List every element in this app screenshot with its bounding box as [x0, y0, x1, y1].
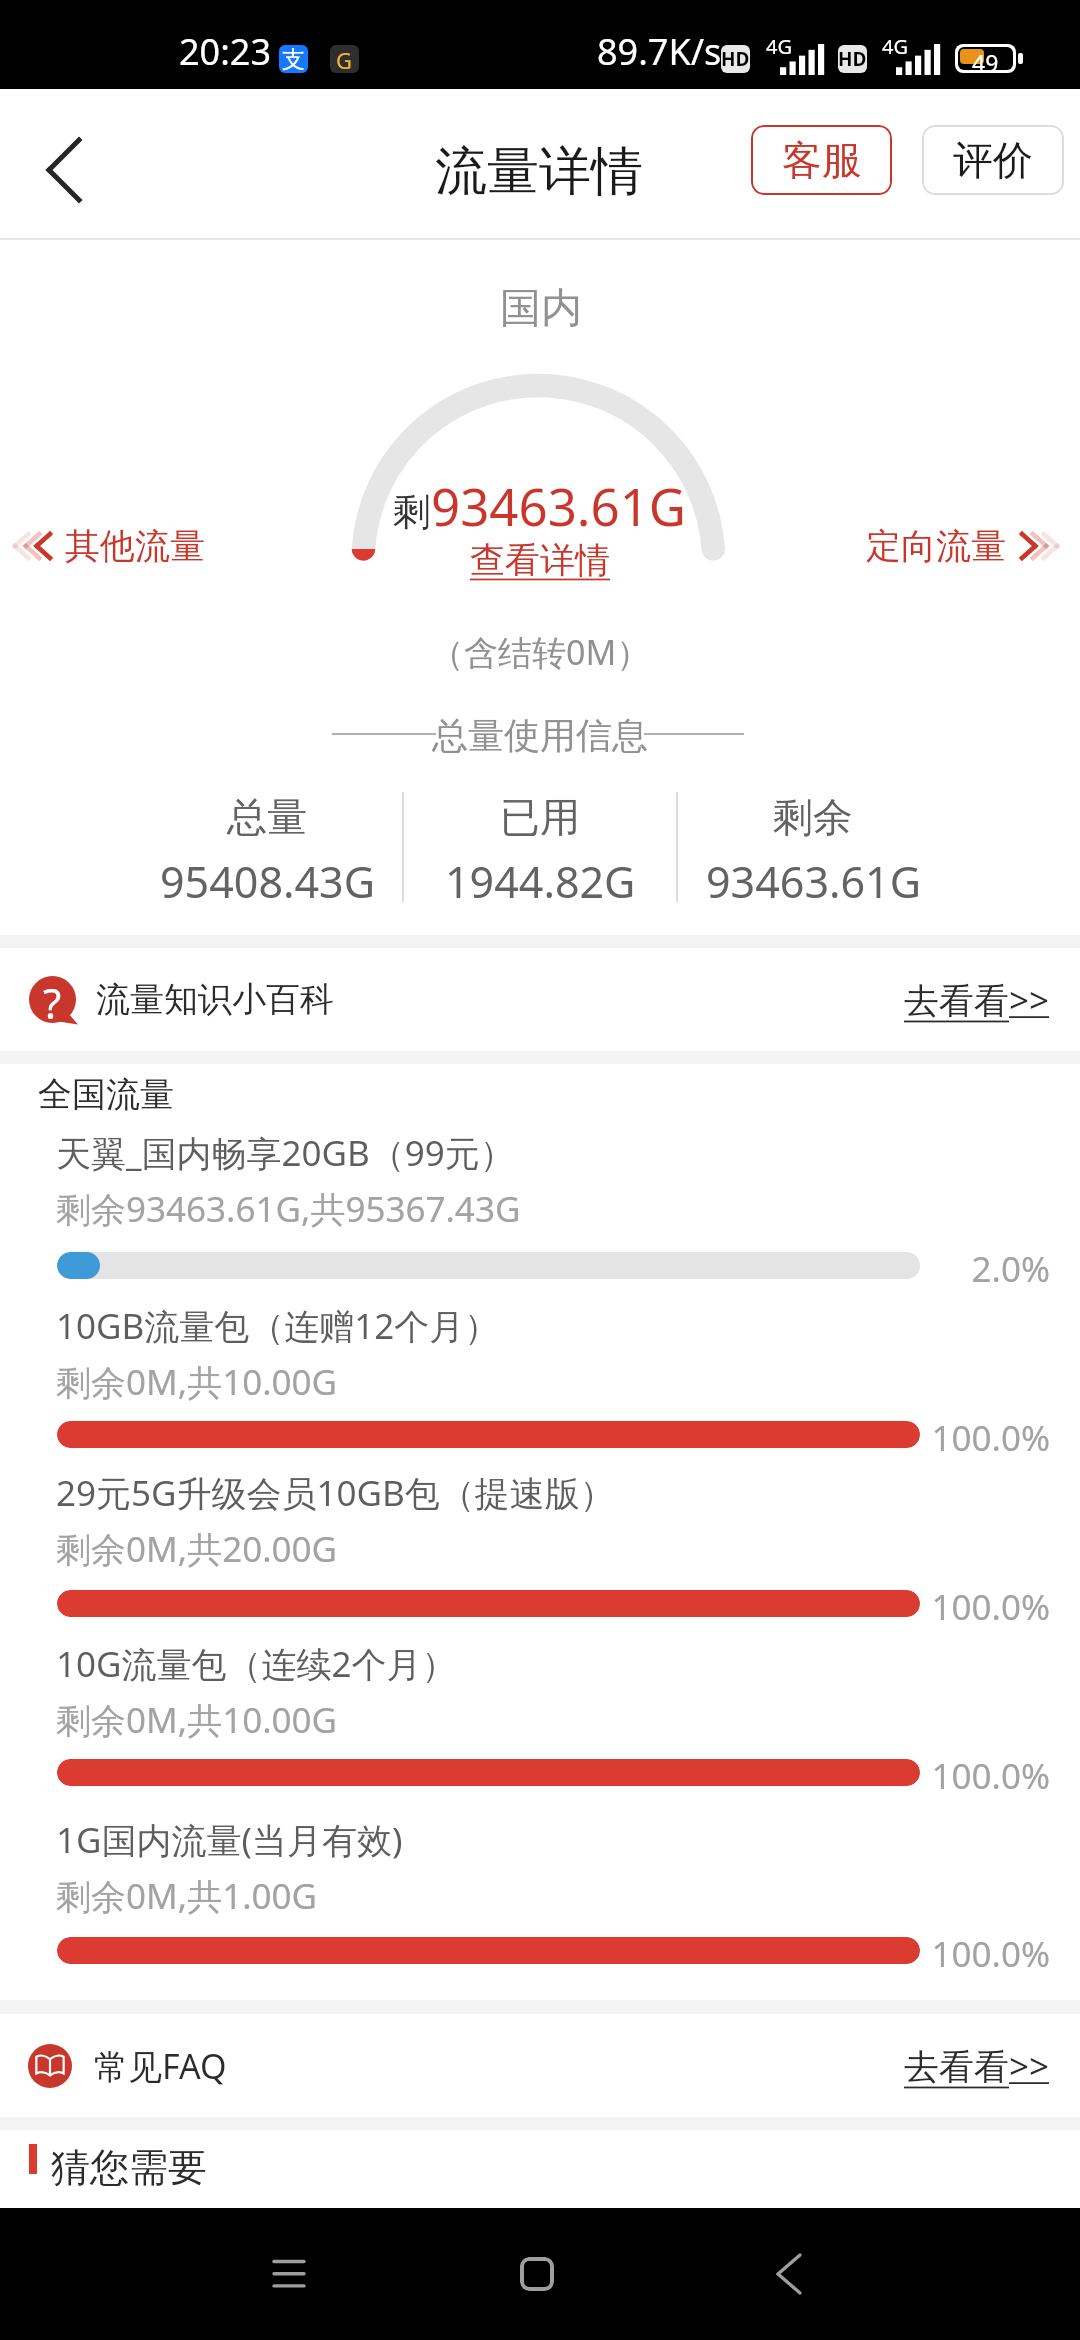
staticText: 49	[972, 47, 999, 70]
staticText: 10GB流量包（连赠12个月）	[56, 1302, 500, 1350]
staticText: 10G流量包（连续2个月）	[56, 1640, 457, 1688]
staticText: （含结转0M）	[430, 629, 651, 675]
button[interactable]: 定向流量	[856, 516, 1068, 576]
staticText: 1G国内流量(当月有效)	[56, 1816, 403, 1864]
button[interactable]: Back	[21, 125, 111, 215]
staticText: 100.0%	[869, 1930, 1050, 1978]
staticText: 100.0%	[869, 1583, 1050, 1631]
staticText: 95408.43G	[160, 852, 375, 911]
button[interactable]: Back	[739, 2224, 839, 2324]
staticText: 流量知识小百科	[96, 978, 334, 1021]
staticText: HD	[721, 46, 750, 72]
button[interactable]: 评价	[922, 125, 1064, 195]
button[interactable]: 其他流量	[3, 516, 215, 576]
staticText: 天翼_国内畅享20GB（99元）	[56, 1129, 515, 1177]
staticText: 100.0%	[869, 1752, 1050, 1800]
staticText: 4G	[882, 33, 908, 60]
staticText: 100.0%	[869, 1414, 1050, 1462]
staticText: 剩余0M,共10.00G	[56, 1696, 338, 1744]
staticText: 评价	[953, 135, 1033, 185]
staticText: 剩	[393, 488, 431, 536]
staticText: 剩余	[773, 792, 853, 842]
staticText: 剩余0M,共20.00G	[56, 1525, 338, 1573]
staticText: 20:23	[179, 27, 272, 76]
staticText: HD	[838, 46, 867, 72]
staticText: 29元5G升级会员10GB包（提速版）	[56, 1469, 615, 1517]
staticText: 猜您需要	[51, 2143, 207, 2192]
staticText: 总量使用信息	[432, 713, 648, 758]
button[interactable]	[0, 1455, 1080, 1624]
staticText: 1944.82G	[445, 852, 636, 911]
staticText: 剩余0M,共10.00G	[56, 1358, 338, 1406]
staticText: G	[336, 45, 353, 73]
button[interactable]: ?	[0, 948, 1080, 1051]
staticText: 剩余93463.61G,共95367.43G	[56, 1185, 521, 1233]
staticText: 其他流量	[65, 524, 205, 568]
staticText: 去看看>>	[904, 976, 1050, 1024]
staticText: 国内	[500, 283, 582, 335]
staticText: 去看看>>	[904, 2042, 1050, 2090]
staticText: ?	[43, 974, 62, 1021]
staticText: 查看详情	[470, 538, 610, 582]
staticText: 支	[282, 45, 305, 73]
button[interactable]: 查看详情	[460, 530, 620, 590]
button[interactable]: 常见FAQ	[0, 2014, 1080, 2117]
staticText: 常见FAQ	[94, 2043, 227, 2089]
staticText: 已用	[500, 792, 580, 842]
staticText: 4G	[766, 33, 792, 60]
staticText: 93463.61G	[706, 852, 921, 911]
button[interactable]	[0, 1626, 1080, 1793]
staticText: 93463.61G	[431, 471, 687, 540]
staticText: 89.7K/s	[597, 27, 722, 76]
button[interactable]: Recent apps	[239, 2224, 339, 2324]
button[interactable]: Home	[487, 2224, 587, 2324]
staticText: 剩余0M,共1.00G	[56, 1872, 318, 1920]
staticText: 客服	[782, 135, 862, 185]
staticText: 2.0%	[869, 1245, 1050, 1293]
button[interactable]	[0, 1802, 1080, 1971]
staticText: 流量详情	[435, 139, 643, 205]
button[interactable]	[0, 1115, 1080, 1286]
button[interactable]: 客服	[751, 125, 892, 195]
staticText: 定向流量	[866, 524, 1006, 568]
staticText: 总量	[227, 792, 307, 842]
staticText: 全国流量	[38, 1073, 174, 1116]
button[interactable]	[0, 1288, 1080, 1455]
